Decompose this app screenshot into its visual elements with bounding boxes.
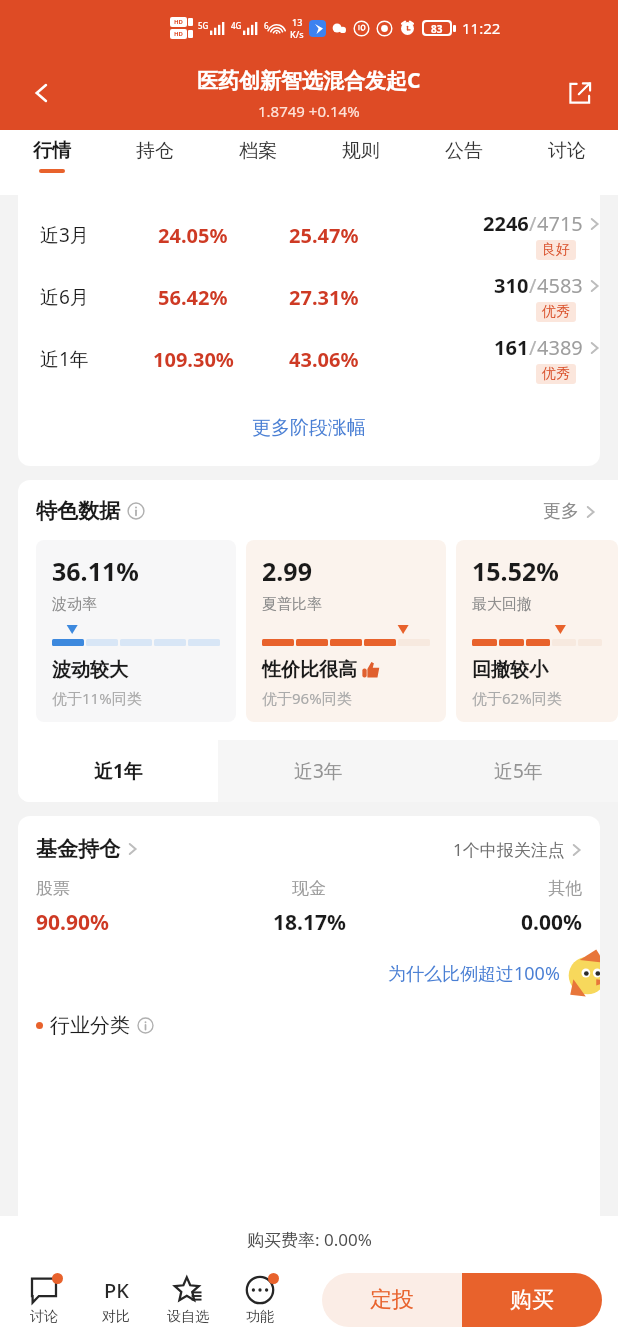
button[interactable]: 近1年 bbox=[18, 328, 600, 390]
staticText: 波动较大 bbox=[52, 658, 128, 682]
staticText: 83 bbox=[431, 22, 443, 34]
button[interactable]: PK bbox=[80, 1262, 152, 1338]
staticText: 设自选 bbox=[167, 1308, 209, 1326]
staticText: 夏普比率 bbox=[262, 595, 322, 614]
staticText: 161 bbox=[494, 334, 529, 361]
staticText: 109.30% bbox=[153, 346, 234, 373]
staticText: 医药创新智选混合发起C bbox=[197, 66, 421, 95]
staticText: 优于11%同类 bbox=[52, 688, 142, 708]
staticText: 股票 bbox=[36, 878, 70, 899]
staticText: 近3月 bbox=[40, 222, 128, 248]
staticText: K/s bbox=[290, 28, 304, 40]
button[interactable]: 公告 bbox=[412, 130, 515, 195]
button[interactable]: 设自选 bbox=[152, 1262, 224, 1338]
staticText: 优秀 bbox=[542, 303, 570, 321]
staticText: 优秀 bbox=[542, 365, 570, 383]
staticText: 56.42% bbox=[158, 284, 228, 311]
button[interactable]: 定投 bbox=[322, 1273, 462, 1327]
staticText: 43.06% bbox=[289, 346, 359, 373]
staticText: 4715 bbox=[537, 210, 583, 237]
staticText: 良好 bbox=[542, 241, 570, 259]
staticText: 档案 bbox=[239, 139, 277, 163]
staticText: 行情 bbox=[33, 139, 71, 163]
button[interactable]: 讨论 bbox=[515, 130, 618, 195]
staticText: 讨论 bbox=[30, 1308, 58, 1326]
button[interactable]: 行情 bbox=[0, 130, 103, 195]
staticText: 定投 bbox=[370, 1286, 414, 1314]
staticText: 优于96%同类 bbox=[262, 688, 352, 708]
button[interactable]: 基金持仓 bbox=[36, 836, 138, 862]
button[interactable]: 近5年 bbox=[418, 740, 618, 802]
staticText: 为什么比例超过100% bbox=[388, 961, 560, 986]
staticText: 近5年 bbox=[494, 758, 543, 784]
staticText: 更多 bbox=[543, 500, 579, 523]
staticText: PK bbox=[104, 1277, 129, 1304]
staticText: 13 bbox=[292, 16, 303, 28]
button[interactable]: 36.11% bbox=[36, 540, 236, 722]
button[interactable]: 持仓 bbox=[103, 130, 206, 195]
staticText: 优于62%同类 bbox=[472, 688, 562, 708]
button[interactable]: 规则 bbox=[309, 130, 412, 195]
staticText: 0.00% bbox=[521, 908, 582, 937]
button[interactable]: Back bbox=[20, 71, 64, 115]
staticText: 购买费率: 0.00% bbox=[247, 1228, 372, 1251]
staticText: 6 bbox=[264, 20, 269, 31]
staticText: 规则 bbox=[342, 139, 380, 163]
button[interactable]: 近3月 bbox=[18, 204, 600, 266]
staticText: 功能 bbox=[246, 1308, 274, 1326]
staticText: 购买 bbox=[510, 1286, 554, 1314]
staticText: 性价比很高 bbox=[262, 658, 357, 682]
staticText: / bbox=[529, 272, 537, 299]
staticText: 近3年 bbox=[294, 758, 343, 784]
staticText: 18.17% bbox=[273, 908, 346, 937]
button[interactable]: 2.99 bbox=[246, 540, 446, 722]
button[interactable]: 为什么比例超过100% bbox=[388, 961, 560, 986]
button[interactable]: 近1年 bbox=[18, 740, 218, 802]
staticText: 近1年 bbox=[94, 758, 143, 784]
staticText: 2.99 bbox=[262, 554, 312, 588]
staticText: 25.47% bbox=[289, 222, 359, 249]
staticText: 2246 bbox=[483, 210, 529, 237]
staticText: 4389 bbox=[537, 334, 583, 361]
staticText: 其他 bbox=[548, 878, 582, 899]
staticText: HD bbox=[174, 18, 183, 26]
button[interactable]: 购买 bbox=[462, 1273, 602, 1327]
staticText: 1.8749 +0.14% bbox=[258, 101, 360, 121]
staticText: 行业分类 bbox=[50, 1013, 130, 1038]
button[interactable]: 1个中报关注点 bbox=[453, 838, 582, 861]
staticText: 基金持仓 bbox=[36, 836, 120, 862]
staticText: 波动率 bbox=[52, 595, 97, 614]
staticText: 最大回撤 bbox=[472, 595, 532, 614]
staticText: / bbox=[529, 210, 537, 237]
staticText: 4583 bbox=[537, 272, 583, 299]
staticText: 5G bbox=[198, 20, 209, 31]
staticText: 近6月 bbox=[40, 284, 128, 310]
staticText: 讨论 bbox=[548, 139, 586, 163]
button[interactable]: 近3年 bbox=[218, 740, 418, 802]
button[interactable]: 近6月 bbox=[18, 266, 600, 328]
staticText: 27.31% bbox=[289, 284, 359, 311]
staticText: 更多阶段涨幅 bbox=[252, 416, 366, 440]
button[interactable]: 讨论 bbox=[8, 1262, 80, 1338]
staticText: 1个中报关注点 bbox=[453, 838, 565, 861]
staticText: 11:22 bbox=[462, 18, 501, 38]
staticText: 近1年 bbox=[40, 346, 128, 372]
button[interactable]: 更多阶段涨幅 bbox=[18, 390, 600, 466]
staticText: 现金 bbox=[292, 878, 326, 899]
button[interactable]: 功能 bbox=[224, 1262, 296, 1338]
staticText: 4G bbox=[231, 20, 242, 31]
staticText: 310 bbox=[494, 272, 529, 299]
staticText: 24.05% bbox=[158, 222, 228, 249]
button[interactable]: 15.52% bbox=[456, 540, 618, 722]
staticText: 36.11% bbox=[52, 554, 139, 588]
staticText: HD bbox=[174, 30, 183, 38]
staticText: 特色数据 bbox=[36, 498, 120, 524]
staticText: 公告 bbox=[445, 139, 483, 163]
staticText: 回撤较小 bbox=[472, 658, 548, 682]
button[interactable]: 档案 bbox=[206, 130, 309, 195]
staticText: / bbox=[529, 334, 537, 361]
button[interactable]: 更多 bbox=[543, 500, 596, 523]
button[interactable]: Share bbox=[558, 71, 602, 115]
button[interactable]: 行业分类 bbox=[36, 1013, 600, 1038]
staticText: 15.52% bbox=[472, 554, 559, 588]
